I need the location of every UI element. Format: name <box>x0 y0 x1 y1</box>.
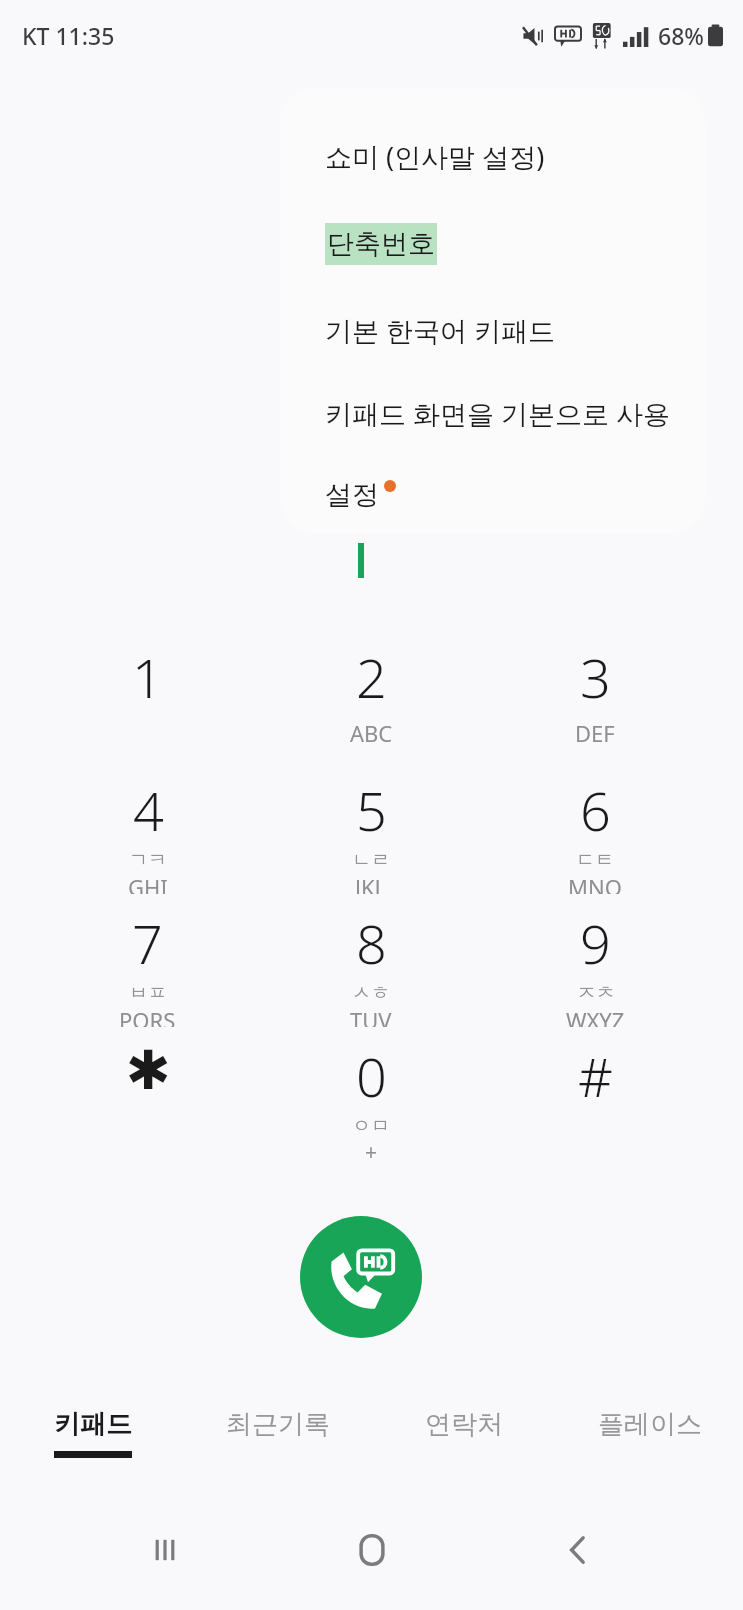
button[interactable]: 0 <box>259 1027 483 1160</box>
button[interactable]: Home <box>330 1508 414 1592</box>
button[interactable]: Back <box>536 1508 620 1592</box>
staticText: KT 11:35 <box>22 20 115 51</box>
staticText: 단축번호 <box>327 227 435 261</box>
staticText: 키패드 <box>54 1408 132 1441</box>
staticText: # <box>578 1039 613 1113</box>
staticText: ㄱㅋ <box>129 848 167 872</box>
button[interactable]: 키패드 <box>0 1392 185 1492</box>
staticText: 0 <box>356 1039 387 1113</box>
staticText: ㄴㄹ <box>352 848 390 872</box>
button[interactable]: 3 <box>483 628 707 761</box>
button[interactable]: 설정 <box>280 478 705 512</box>
staticText: TUV <box>350 1005 392 1027</box>
button[interactable]: # <box>483 1027 707 1160</box>
staticText: ✱ <box>125 1039 171 1102</box>
staticText: WXYZ <box>566 1005 625 1027</box>
button[interactable]: ✱ <box>36 1027 259 1160</box>
staticText: 7 <box>132 906 163 980</box>
button[interactable]: 2 <box>259 628 483 761</box>
staticText: ㄷㅌ <box>576 848 614 872</box>
button[interactable]: Recents <box>123 1508 207 1592</box>
staticText: DEF <box>575 718 615 748</box>
staticText: 설정 <box>325 478 379 512</box>
staticText: 쇼미 (인사말 설정) <box>325 138 545 175</box>
button[interactable]: 키패드 화면을 기본으로 사용 <box>280 395 705 432</box>
staticText: 9 <box>580 906 611 980</box>
button[interactable]: 5 <box>259 761 483 894</box>
button[interactable]: 6 <box>483 761 707 894</box>
button[interactable]: 연락처 <box>371 1392 557 1492</box>
button[interactable]: 최근기록 <box>185 1392 371 1492</box>
staticText: 기본 한국어 키패드 <box>325 312 556 349</box>
staticText: 5 <box>356 773 387 847</box>
staticText: 최근기록 <box>226 1408 330 1441</box>
staticText: 키패드 화면을 기본으로 사용 <box>325 395 671 432</box>
staticText: MNO <box>568 872 622 894</box>
staticText: 3 <box>580 640 611 714</box>
staticText: 1 <box>132 640 163 714</box>
staticText: 연락처 <box>425 1408 503 1441</box>
staticText: 4 <box>133 773 164 847</box>
staticText: ABC <box>350 718 393 748</box>
staticText: PQRS <box>119 1005 176 1027</box>
staticText: 6 <box>580 773 611 847</box>
staticText: 8 <box>356 906 387 980</box>
button[interactable]: 기본 한국어 키패드 <box>280 312 705 349</box>
button[interactable]: 1 <box>36 628 259 761</box>
staticText: ㅇㅁ <box>352 1114 390 1138</box>
button[interactable]: 7 <box>36 894 259 1027</box>
staticText: 68% <box>658 20 704 51</box>
staticText: JKL <box>355 872 387 894</box>
staticText: + <box>365 1138 378 1160</box>
staticText: GHI <box>128 872 168 894</box>
button[interactable]: 플레이스 <box>557 1392 743 1492</box>
button[interactable]: 쇼미 (인사말 설정) <box>280 138 705 175</box>
staticText: 플레이스 <box>598 1408 702 1441</box>
button[interactable]: Call <box>300 1216 422 1338</box>
button[interactable]: 8 <box>259 894 483 1027</box>
button[interactable]: 단축번호 <box>280 223 705 265</box>
button[interactable]: 4 <box>36 761 259 894</box>
staticText: ㅅㅎ <box>352 981 390 1005</box>
button[interactable]: 9 <box>483 894 707 1027</box>
staticText: ㅈㅊ <box>577 981 615 1005</box>
staticText: ㅂㅍ <box>129 981 167 1005</box>
staticText: 2 <box>356 640 387 714</box>
